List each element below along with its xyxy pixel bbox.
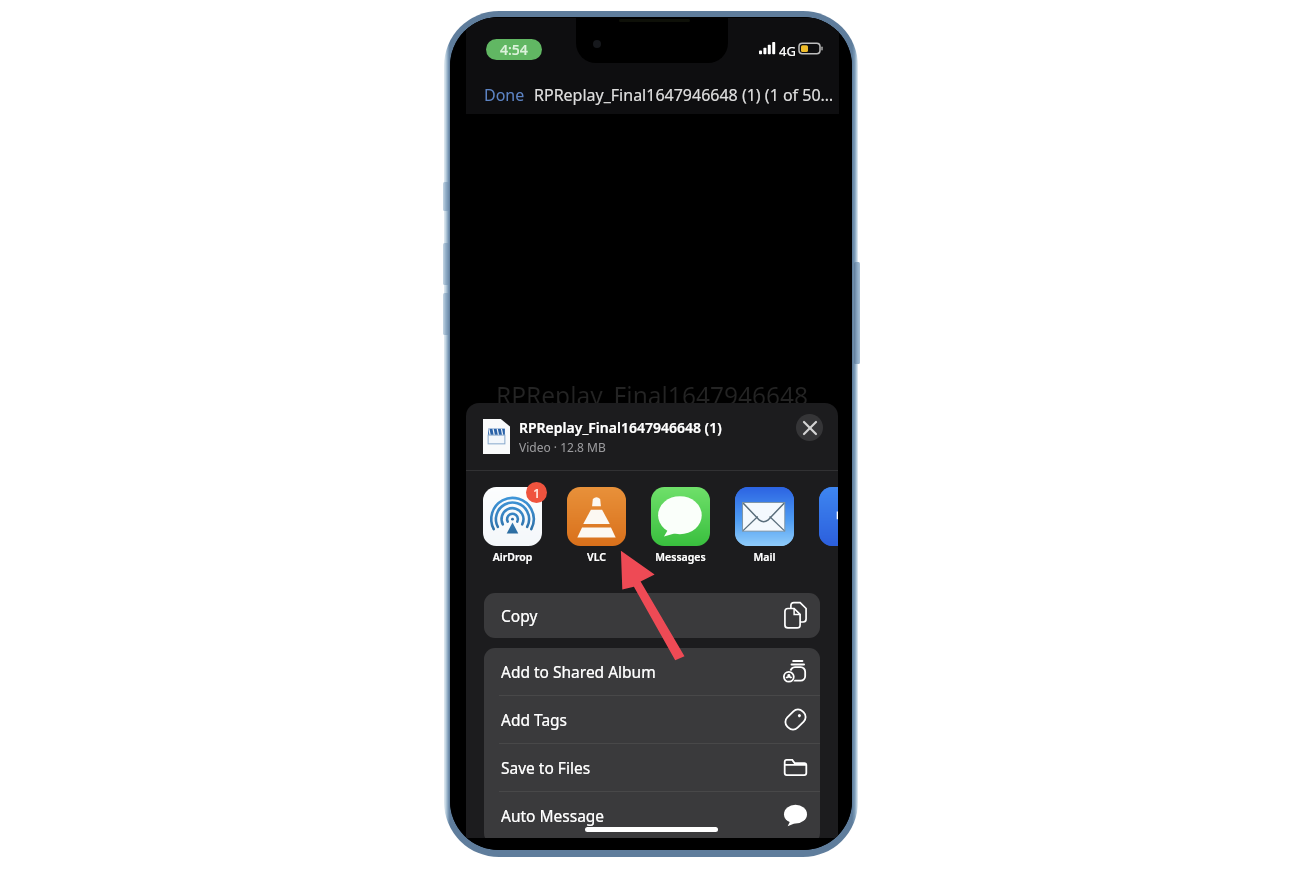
button[interactable]: Done	[450, 78, 527, 112]
button[interactable]: Mail	[735, 487, 794, 572]
staticText: Auto Message	[501, 805, 605, 826]
button[interactable]: Copy	[484, 593, 820, 638]
button[interactable]: AirDrop	[483, 487, 542, 572]
staticText: Done	[484, 84, 525, 106]
staticText: AirDrop	[483, 550, 542, 564]
staticText: Add to Shared Album	[501, 661, 656, 682]
button[interactable]: Fac	[819, 487, 838, 572]
staticText: VLC	[567, 550, 626, 564]
staticText: RPReplay_Final1647946648	[496, 379, 809, 412]
staticText: 4G	[779, 42, 796, 60]
button[interactable]: Close	[796, 414, 823, 441]
button[interactable]: Add to Shared Album	[484, 648, 820, 695]
staticText: 1	[533, 484, 541, 502]
staticText: Video · 12.8 MB	[519, 439, 606, 455]
button[interactable]: Save to Files	[484, 744, 820, 791]
staticText: Mail	[735, 550, 794, 564]
button[interactable]: Add Tags	[484, 696, 820, 743]
staticText: Add Tags	[501, 709, 568, 730]
button[interactable]: Auto Message	[484, 792, 820, 838]
button[interactable]: Messages	[651, 487, 710, 572]
staticText: 4:54	[500, 40, 528, 59]
staticText: Save to Files	[501, 757, 591, 778]
button[interactable]: VLC	[567, 487, 626, 572]
staticText: Copy	[501, 605, 538, 626]
staticText: RPReplay_Final1647946648 (1)	[519, 418, 722, 437]
staticText: Messages	[651, 550, 710, 564]
staticText: RPReplay_Final1647946648 (1) (1 of 50…	[534, 84, 834, 106]
